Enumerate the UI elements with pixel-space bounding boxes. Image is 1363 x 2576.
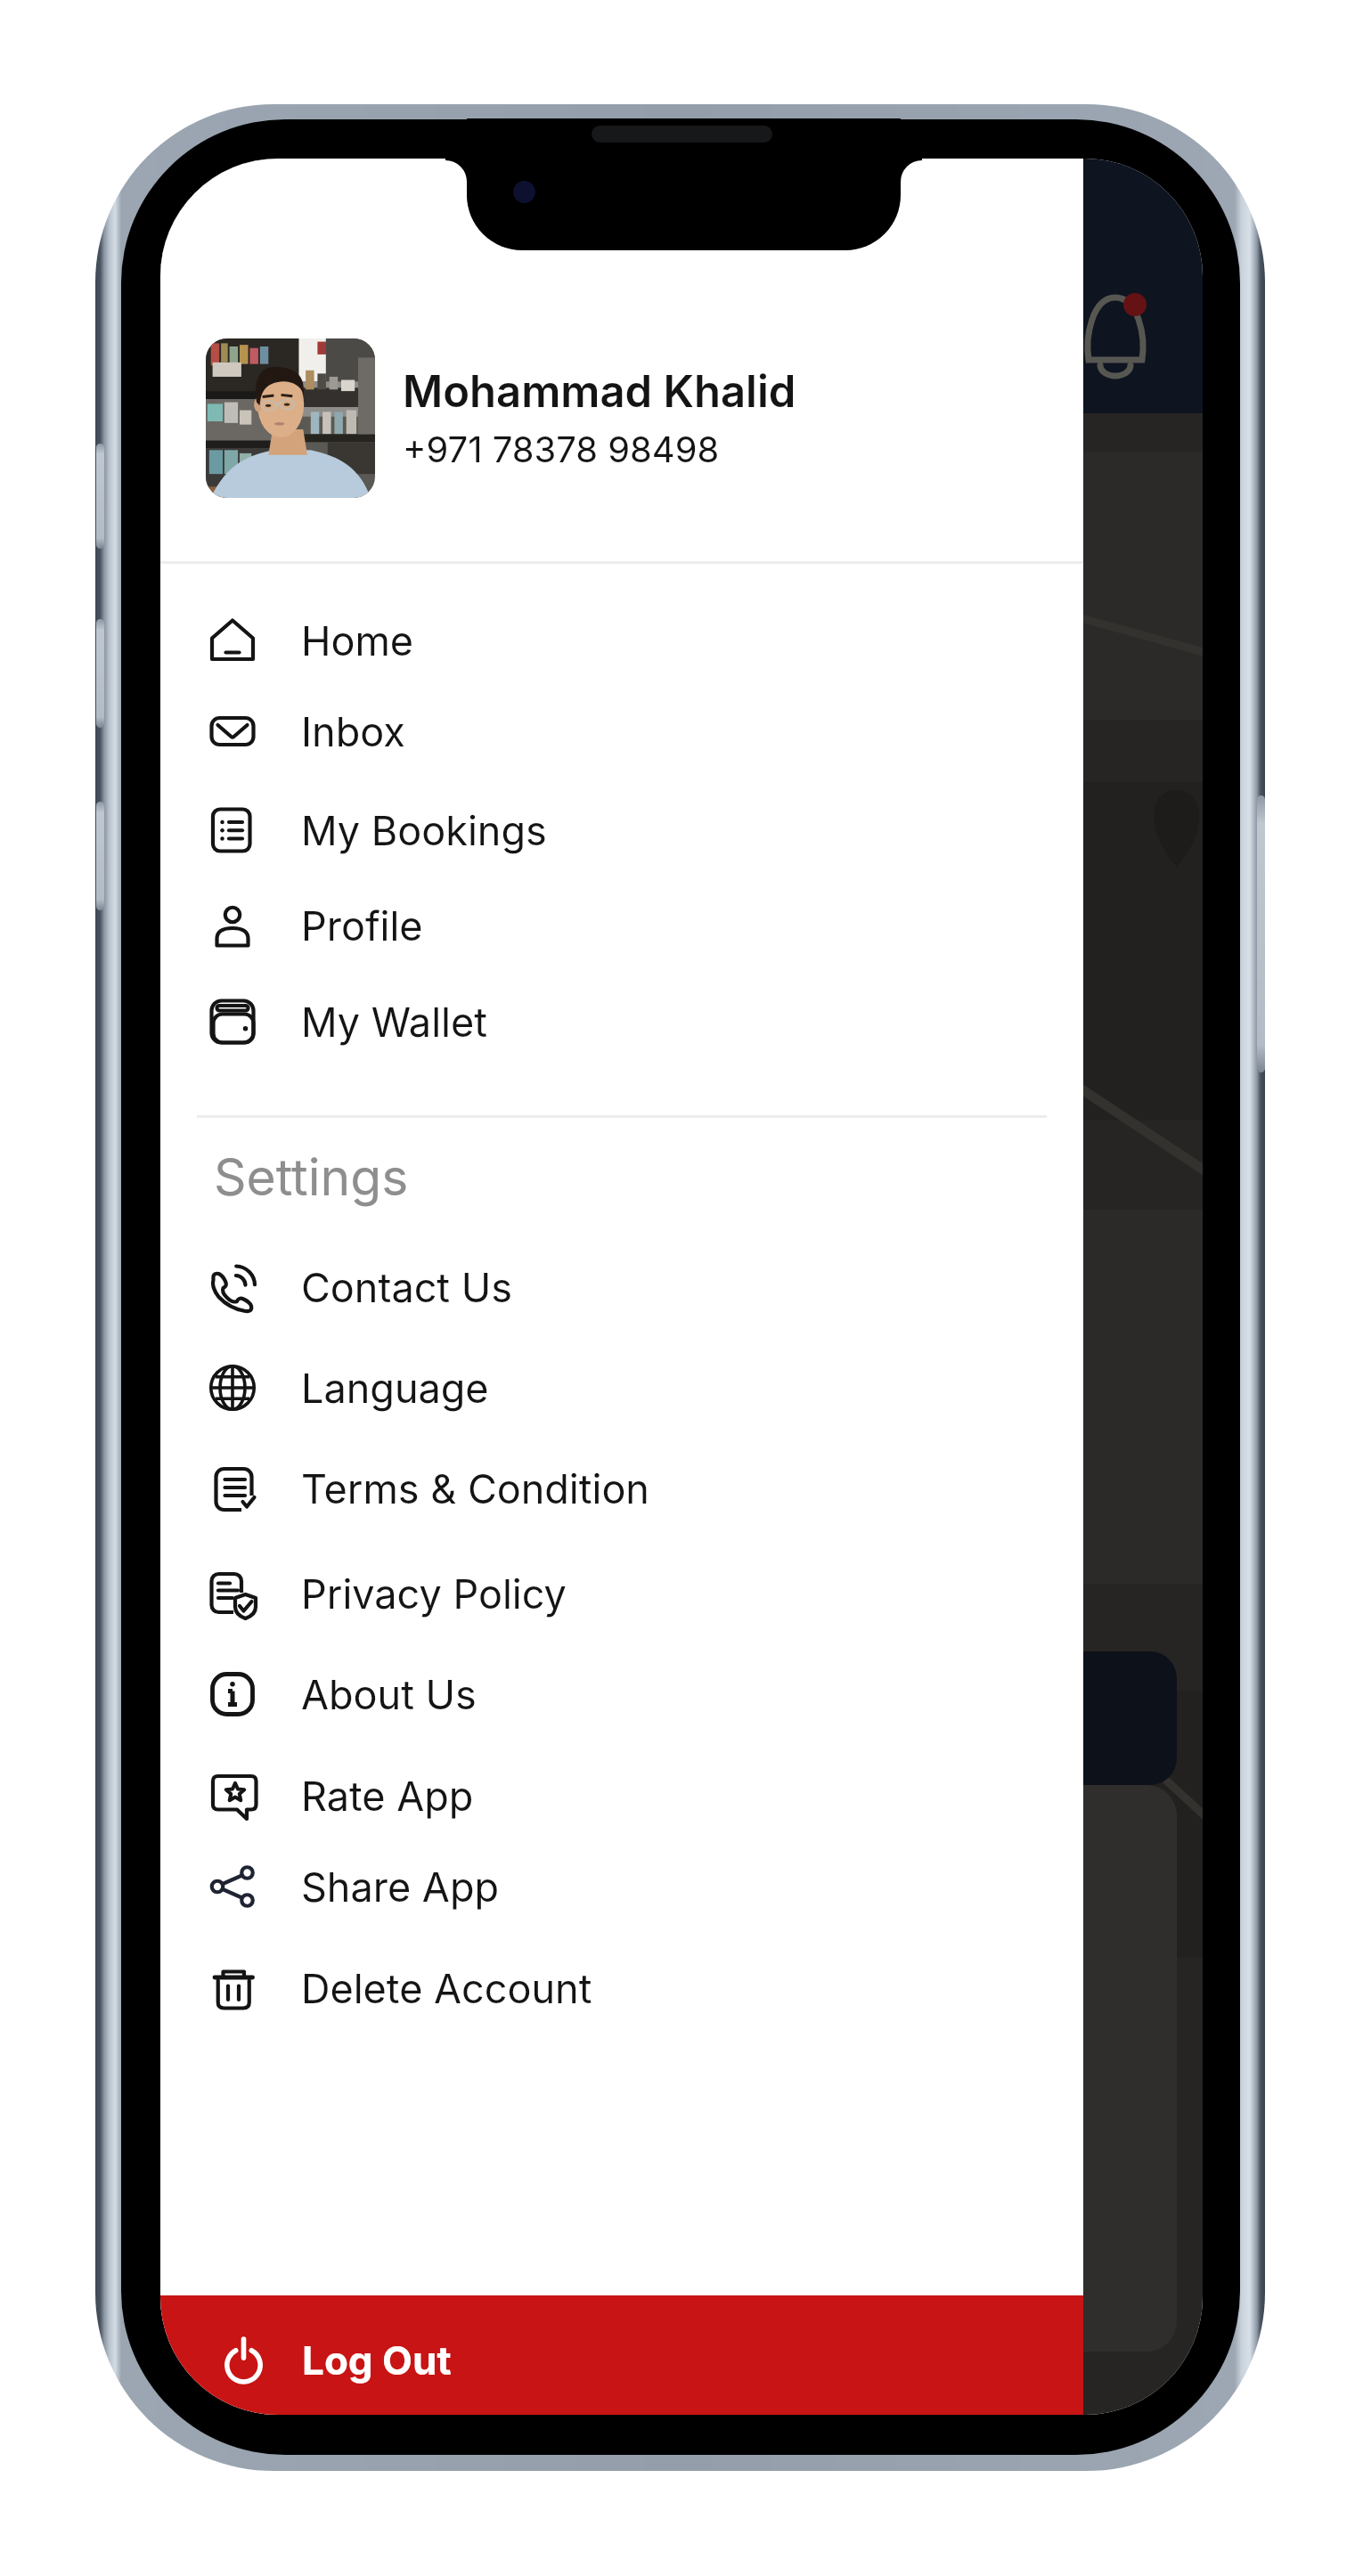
button[interactable]: My Bookings bbox=[160, 780, 1083, 880]
button[interactable]: Inbox bbox=[160, 681, 1083, 781]
button[interactable]: About Us bbox=[160, 1644, 1083, 1744]
button[interactable]: Terms & Condition bbox=[160, 1439, 1083, 1538]
button[interactable]: Log Out bbox=[160, 2295, 1083, 2415]
button[interactable]: Language bbox=[160, 1338, 1083, 1438]
staticText: Language bbox=[301, 1364, 489, 1412]
button[interactable]: Delete Account bbox=[160, 1938, 1083, 2038]
button[interactable]: Notifications bbox=[1065, 268, 1165, 368]
button[interactable]: Mohammad Khalid bbox=[160, 327, 1083, 509]
staticText: Rate App bbox=[301, 1772, 474, 1820]
staticText: About Us bbox=[301, 1670, 477, 1718]
button[interactable]: Privacy Policy bbox=[160, 1544, 1083, 1643]
staticText: Delete Account bbox=[301, 1964, 592, 2012]
staticText: Settings bbox=[214, 1146, 409, 1208]
staticText: Privacy Policy bbox=[301, 1569, 567, 1618]
staticText: Share App bbox=[301, 1863, 499, 1911]
staticText: +971 78378 98498 bbox=[403, 428, 720, 470]
button[interactable]: Close menu bbox=[1083, 159, 1203, 2415]
staticText: My Bookings bbox=[301, 806, 547, 854]
staticText: Profile bbox=[301, 901, 423, 950]
button[interactable]: Profile bbox=[160, 876, 1083, 975]
staticText: Mohammad Khalid bbox=[403, 365, 796, 418]
staticText: Inbox bbox=[301, 707, 405, 755]
button[interactable]: My Wallet bbox=[160, 972, 1083, 1072]
button[interactable]: Rate App bbox=[160, 1746, 1083, 1846]
staticText: My Wallet bbox=[301, 998, 487, 1046]
staticText: Home bbox=[301, 616, 414, 664]
staticText: Log Out bbox=[302, 2336, 452, 2384]
staticText: Contact Us bbox=[301, 1263, 512, 1311]
staticText: Terms & Condition bbox=[301, 1464, 649, 1512]
button[interactable]: Share App bbox=[160, 1837, 1083, 1936]
button[interactable]: Contact Us bbox=[160, 1237, 1083, 1337]
button[interactable]: Home bbox=[160, 591, 1083, 690]
